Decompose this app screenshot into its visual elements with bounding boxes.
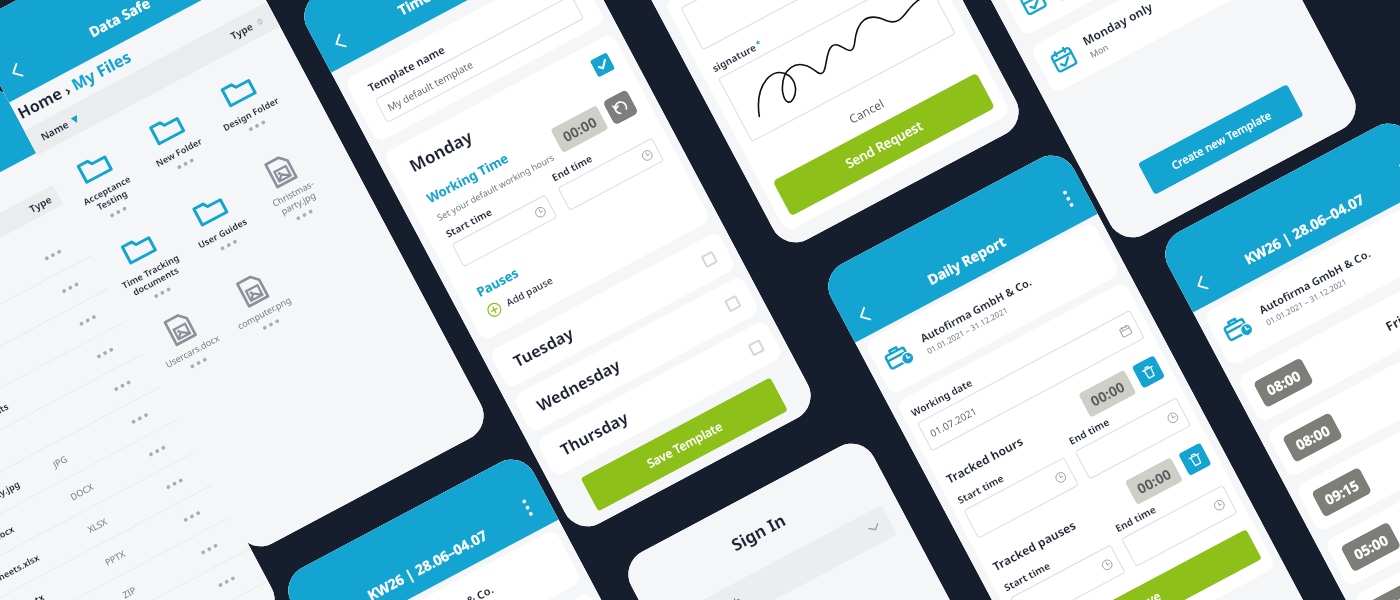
staticText: Working date xyxy=(908,375,975,420)
button[interactable]: New Folder xyxy=(123,95,237,214)
button[interactable]: Mo-Fr 9-5 xyxy=(1015,0,1229,21)
button[interactable] xyxy=(557,138,664,211)
other: Back xyxy=(849,300,879,330)
button[interactable] xyxy=(451,194,557,267)
button[interactable]: Name xyxy=(38,112,82,144)
button[interactable]: Autofirma GmbH & Co. xyxy=(879,238,1104,377)
button[interactable]: 05:00 xyxy=(1324,420,1400,588)
staticText: Start time xyxy=(955,471,1006,507)
staticText: JPG xyxy=(50,417,135,470)
button[interactable]: Back xyxy=(849,300,879,330)
staticText: User Guides xyxy=(195,215,249,251)
button[interactable]: Back xyxy=(1187,269,1216,299)
staticText: Autofirma GmbH & Co. xyxy=(379,581,497,600)
button[interactable]: backup.zip xyxy=(0,516,250,600)
button[interactable]: Usercars.docx xyxy=(0,418,198,579)
button[interactable]: Design Folder xyxy=(194,57,309,176)
button[interactable]: 09:15 xyxy=(1295,365,1400,533)
other: More options xyxy=(521,499,533,517)
button[interactable] xyxy=(1010,544,1125,600)
staticText: › xyxy=(57,79,78,101)
button[interactable]: Wednesday xyxy=(512,275,761,434)
staticText: Type xyxy=(27,192,54,216)
button[interactable]: 08:00 xyxy=(1353,475,1400,600)
button[interactable]: Save Template xyxy=(580,377,788,512)
button[interactable]: Thursday xyxy=(536,319,784,478)
staticText xyxy=(0,287,65,339)
button[interactable]: computer.png xyxy=(209,257,324,376)
button[interactable]: Design Folder xyxy=(0,287,129,448)
button[interactable] xyxy=(963,457,1079,539)
staticText: Timesheets.xlsx xyxy=(0,524,91,595)
button[interactable] xyxy=(280,219,395,338)
button[interactable]: Delete xyxy=(1178,442,1212,476)
button[interactable]: Quarter.pptx xyxy=(0,483,233,600)
button[interactable]: English xyxy=(667,505,897,600)
staticText: End time xyxy=(1113,502,1159,535)
button[interactable] xyxy=(1121,485,1238,567)
button[interactable]: User Guides xyxy=(0,352,164,513)
staticText: Cancel xyxy=(846,95,887,127)
button[interactable]: My default template xyxy=(374,0,584,123)
button[interactable] xyxy=(1075,397,1191,480)
staticText: XLSX xyxy=(85,483,169,535)
button[interactable] xyxy=(590,52,615,78)
staticText: 00:00 xyxy=(559,112,600,146)
staticText: Time Tracking xyxy=(394,0,490,19)
button[interactable]: Usercars.docx xyxy=(137,295,252,415)
staticText: Mon xyxy=(1087,40,1111,60)
staticText: 05:00 xyxy=(1350,530,1391,564)
button[interactable]: More options xyxy=(1398,163,1400,181)
staticText: New Folder xyxy=(153,134,204,169)
staticText: Create new Template xyxy=(1168,107,1273,173)
other: Back xyxy=(1187,269,1216,299)
staticText: My default template xyxy=(385,57,475,114)
button[interactable]: Timesheets.xlsx xyxy=(0,450,216,600)
button[interactable]: Save xyxy=(1033,529,1262,600)
staticText: backup.zip xyxy=(7,590,126,600)
button[interactable]: Christmas-party.jpg xyxy=(0,385,181,546)
button[interactable]: Acceptance Testing xyxy=(0,222,94,383)
button[interactable]: Acceptance Testing xyxy=(50,133,166,252)
button[interactable]: Reset xyxy=(602,89,639,126)
button[interactable]: Monday only xyxy=(1046,0,1260,78)
button[interactable]: notes.docx xyxy=(8,548,268,600)
staticText: KW26 | 28.06–04.07 xyxy=(1241,189,1367,269)
button[interactable]: Tuesday xyxy=(489,231,737,389)
other: More options xyxy=(1062,190,1074,208)
staticText: signature xyxy=(709,40,758,75)
staticText: 08:00 xyxy=(1379,585,1400,600)
button[interactable]: Back xyxy=(325,27,354,57)
button[interactable]: plan.xlsx xyxy=(25,581,284,600)
staticText: Design Folder xyxy=(220,94,281,133)
button[interactable]: 08:00 xyxy=(1266,311,1400,478)
button[interactable]: More options xyxy=(521,499,533,517)
staticText: End time xyxy=(1066,414,1112,448)
button[interactable]: Type xyxy=(228,13,266,43)
button[interactable]: Time Tracking documents xyxy=(0,320,146,481)
staticText: Start time xyxy=(1001,558,1053,594)
staticText: End time xyxy=(549,151,595,184)
staticText: Usercars.docx xyxy=(163,331,221,370)
staticText: 01.07.2021 xyxy=(927,403,980,440)
button[interactable]: New Folder xyxy=(0,254,111,415)
staticText: 08:00 xyxy=(1263,366,1304,400)
button[interactable]: Create new Template xyxy=(1138,84,1304,195)
button[interactable]: Time Tracking documents xyxy=(93,214,209,334)
button[interactable]: Cancel xyxy=(835,86,898,135)
button[interactable]: 08:00 xyxy=(360,592,613,600)
staticText: Set your default working hours xyxy=(435,151,556,223)
button[interactable]: Delete xyxy=(1132,355,1165,389)
staticText: DOCX xyxy=(68,450,152,502)
button[interactable]: 01.07.2021 xyxy=(917,310,1145,451)
button[interactable]: Back xyxy=(1,57,31,86)
button[interactable]: More options xyxy=(1062,190,1074,208)
button[interactable]: Autofirma GmbH & Co. xyxy=(341,545,566,600)
button[interactable]: 08:00 xyxy=(1237,256,1400,424)
button[interactable]: Autofirma GmbH & Co. xyxy=(1218,209,1400,348)
button[interactable]: User Guides xyxy=(166,176,280,295)
staticText: Autofirma GmbH & Co. xyxy=(917,274,1035,345)
button[interactable]: Add pause xyxy=(485,273,556,319)
button[interactable]: Christmas- party.jpg xyxy=(237,138,352,257)
button[interactable]: Send Request xyxy=(772,73,995,216)
